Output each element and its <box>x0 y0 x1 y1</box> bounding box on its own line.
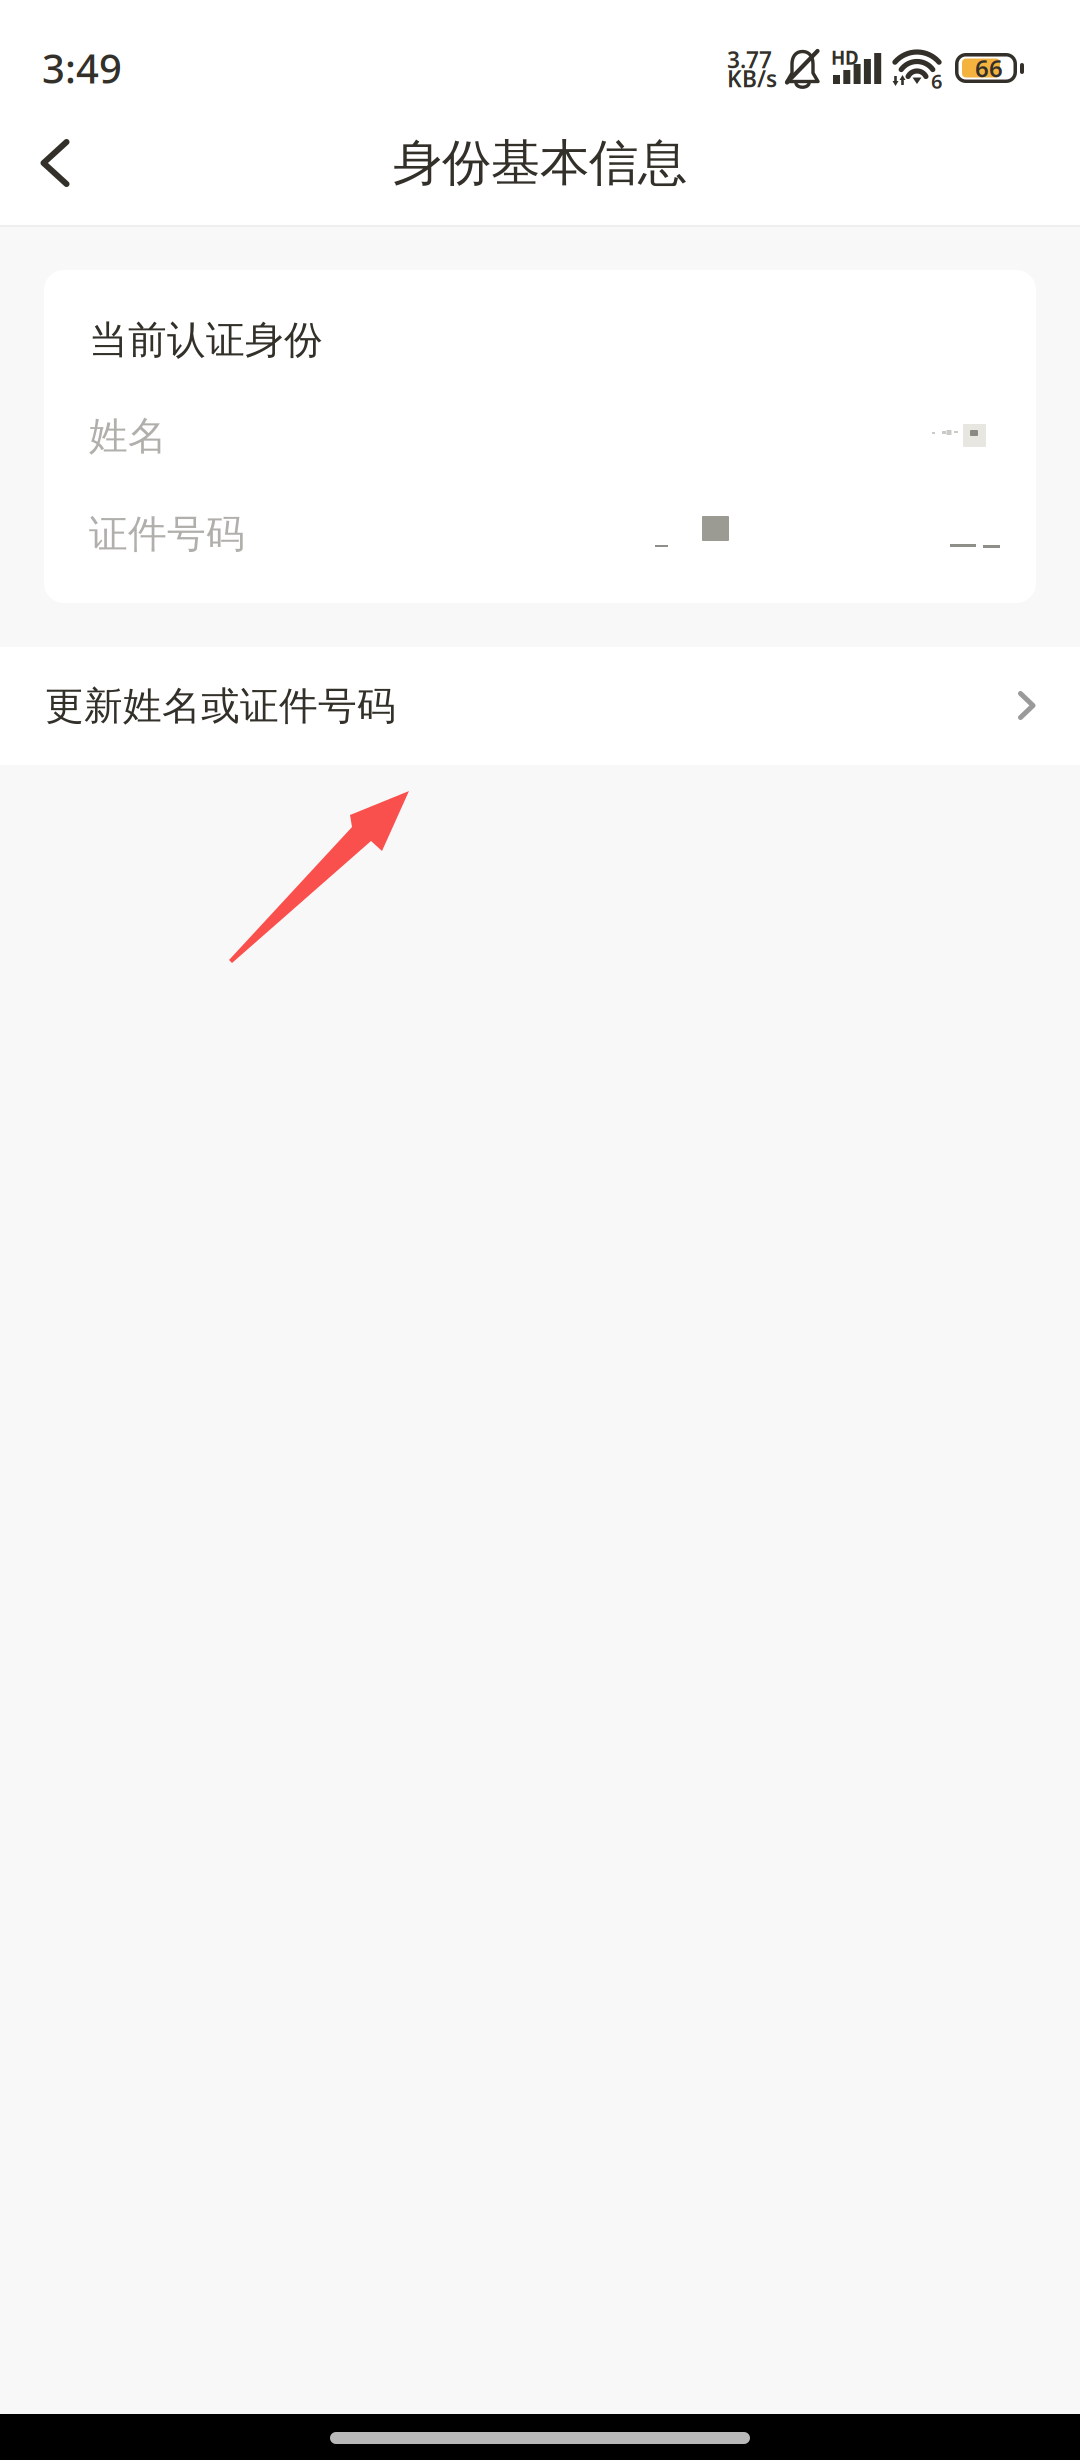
staticText: HD <box>831 45 859 70</box>
staticText: 更新姓名或证件号码 <box>45 682 396 730</box>
staticText: 身份基本信息 <box>393 133 687 193</box>
staticText: 证件号码 <box>89 510 245 558</box>
staticText: KB/s <box>727 63 777 93</box>
staticText: 3.77 <box>727 44 772 74</box>
staticText: 6 <box>931 68 942 94</box>
staticText: 当前认证身份 <box>89 316 323 364</box>
button[interactable]: 更新姓名或证件号码 <box>0 647 1080 765</box>
staticText: 3:49 <box>42 41 122 94</box>
button[interactable]: 返回 <box>0 105 110 220</box>
staticText: 姓名 <box>89 412 167 460</box>
staticText: 66 <box>975 52 1003 84</box>
